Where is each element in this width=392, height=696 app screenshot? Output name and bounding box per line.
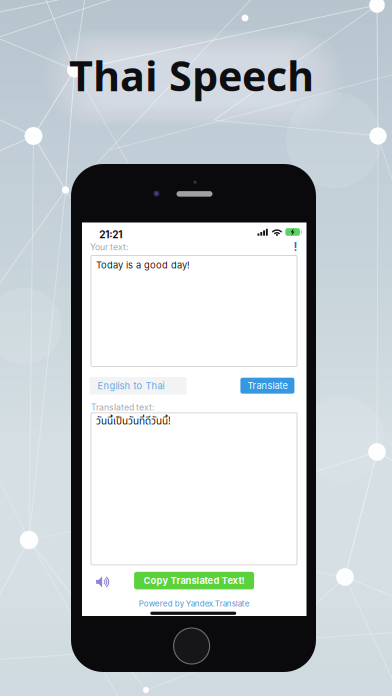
staticText: Your text:: [90, 242, 128, 252]
button[interactable]: English to Thai: [90, 377, 187, 394]
button[interactable]: Powered by Yandex.Translate: [82, 598, 306, 608]
button[interactable]: Speak translated text: [94, 574, 112, 590]
staticText: วันนี้เป็นวันที่ดีวันนี้!: [96, 414, 171, 429]
staticText: English to Thai: [98, 380, 165, 391]
button[interactable]: Copy Translated Text!: [134, 572, 254, 589]
staticText: Today is a good day!: [96, 259, 190, 271]
staticText: Translated text:: [91, 402, 154, 412]
staticText: Copy Translated Text!: [144, 575, 245, 586]
staticText: 21:21: [99, 228, 122, 241]
staticText: !: [293, 240, 297, 254]
staticText: Thai Speech: [69, 47, 314, 103]
staticText: Powered by Yandex.Translate: [139, 599, 250, 608]
staticText: Translate: [247, 380, 287, 391]
button[interactable]: Translate: [240, 378, 294, 394]
